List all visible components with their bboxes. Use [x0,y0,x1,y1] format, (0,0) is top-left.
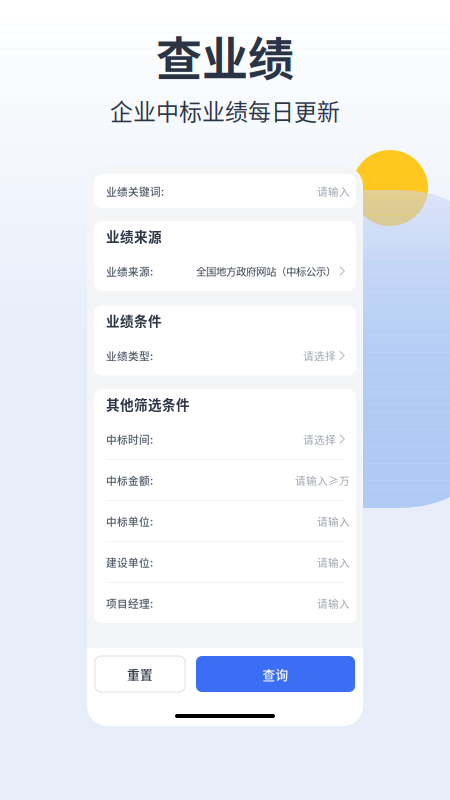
staticText: 查询 [262,665,288,683]
staticText: 请选择 [303,431,336,447]
button[interactable]: 重置 [95,656,185,692]
staticText: 查业绩 [156,22,294,89]
staticText: 请选择 [303,348,336,363]
staticText: 请输入 [317,513,350,529]
staticText: 请输入≥万 [295,472,350,488]
staticText: 业绩条件 [106,311,162,330]
staticText: 业绩来源 [106,226,162,246]
button[interactable]: 中标金额: [94,460,356,500]
staticText: 业绩关键词: [106,183,164,199]
staticText: 中标单位: [106,513,153,529]
staticText: 建设单位: [106,554,153,570]
button[interactable]: 查询 [196,656,355,692]
staticText: 中标金额: [106,472,153,488]
button[interactable]: 项目经理: [94,583,356,623]
staticText: 项目经理: [106,595,153,611]
button[interactable]: 业绩来源: [94,251,356,291]
staticText: 业绩来源: [106,263,153,279]
staticText: 其他筛选条件 [106,394,190,414]
button[interactable]: 业绩关键词: [94,174,356,208]
button[interactable]: 中标时间: [94,419,356,459]
button[interactable]: 建设单位: [94,542,356,582]
staticText: 中标时间: [106,431,153,447]
staticText: 业绩类型: [106,348,153,363]
button[interactable]: 中标单位: [94,501,356,541]
button[interactable]: 业绩类型: [94,335,356,375]
staticText: 请输入 [317,183,350,199]
staticText: 全国地方政府网站（中标公示） [196,263,336,279]
staticText: 请输入 [317,595,350,611]
staticText: 企业中标业绩每日更新 [110,94,340,127]
staticText: 重置 [127,665,153,683]
staticText: 请输入 [317,554,350,570]
